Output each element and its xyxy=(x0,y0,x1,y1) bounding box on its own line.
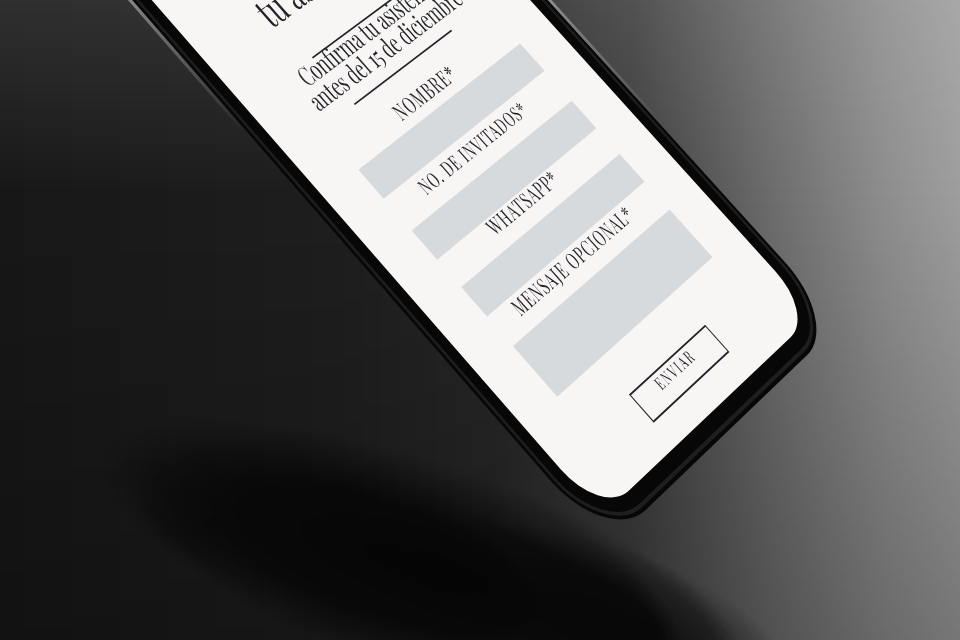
button[interactable]: RSVP invitation form shown on a phone xyxy=(0,0,960,640)
